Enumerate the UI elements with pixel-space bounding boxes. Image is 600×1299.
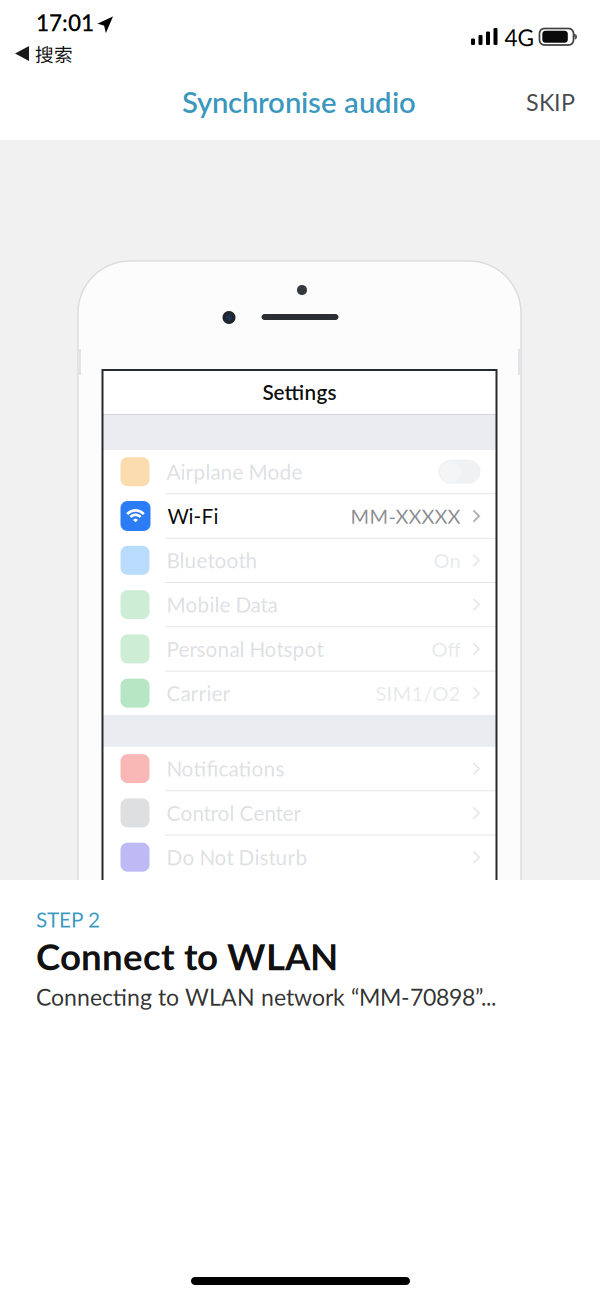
button[interactable]: SKIP [510,78,591,126]
staticText: 17:01 [36,9,94,36]
staticText: Control Center [166,800,301,825]
staticText: Connecting to WLAN network “MM-70898”... [36,983,496,1011]
staticText: 4G [504,24,534,51]
staticText: Mobile Data [166,592,277,617]
staticText: Notifications [166,756,284,781]
staticText: Carrier [166,681,230,706]
staticText: Off [431,637,460,661]
button[interactable]: 搜索 [1,36,87,71]
staticText: 搜索 [35,40,73,67]
staticText: Synchronise audio [182,84,416,119]
staticText: Connect to WLAN [36,934,338,978]
staticText: SKIP [526,88,575,116]
staticText: SIM1/O2 [375,681,460,705]
staticText: Bluetooth [166,548,257,573]
staticText: Do Not Disturb [166,845,307,870]
staticText: STEP 2 [36,907,100,932]
button[interactable]: Wi-Fi [102,494,496,538]
staticText: Settings [262,380,336,404]
staticText: Airplane Mode [166,459,302,484]
staticText: Wi-Fi [167,504,218,528]
staticText: MM-XXXXX [350,504,460,528]
staticText: Personal Hotspot [166,636,323,661]
staticText: On [433,548,460,572]
